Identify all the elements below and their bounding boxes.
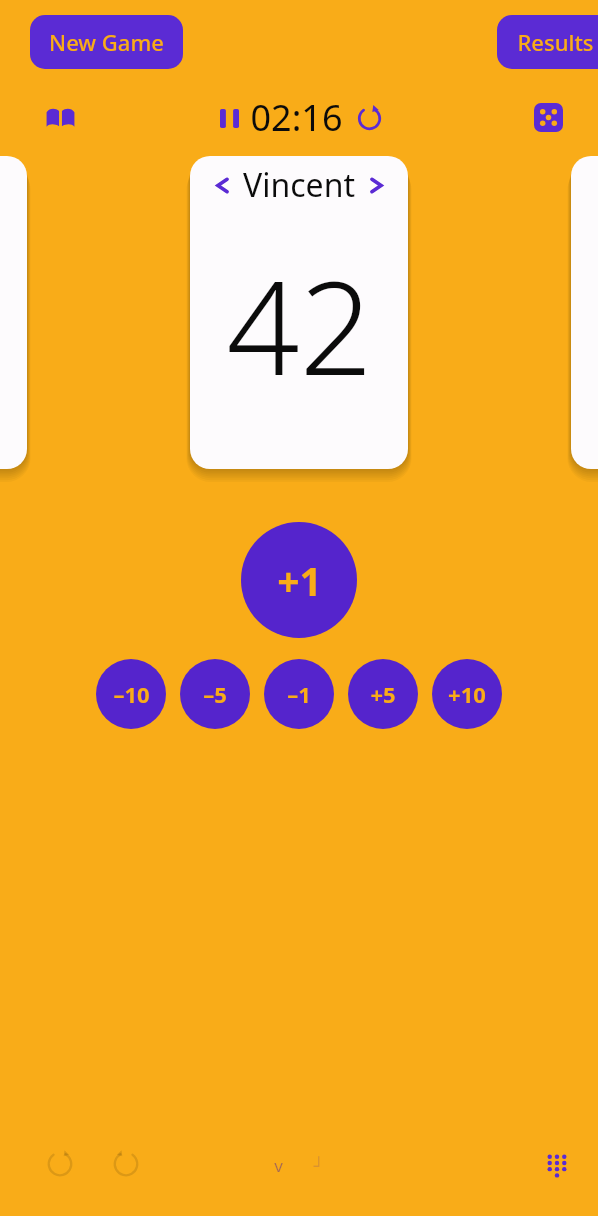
staticText: v [274, 1154, 283, 1177]
staticText: Results [517, 27, 594, 57]
button[interactable] [571, 156, 598, 469]
staticText: –10 [113, 679, 150, 709]
button[interactable]: +5 [348, 659, 418, 729]
staticText: +10 [448, 679, 486, 709]
staticText: Vincent [243, 163, 355, 207]
staticText: 02:16 [250, 93, 343, 142]
button[interactable]: +10 [432, 659, 502, 729]
button[interactable]: +1 [241, 522, 357, 638]
button[interactable]: Pause timer [212, 101, 246, 135]
button[interactable]: –1 [264, 659, 334, 729]
staticText: –5 [203, 679, 227, 709]
staticText: New Game [49, 27, 164, 57]
button[interactable]: Redo [104, 1142, 148, 1186]
button[interactable]: –10 [96, 659, 166, 729]
button[interactable]: Rules [38, 95, 82, 139]
staticText: ┘ [313, 1156, 324, 1176]
button[interactable]: New Game [30, 15, 183, 69]
button[interactable]: Roll dice [526, 95, 570, 139]
staticText: +1 [277, 554, 322, 607]
button[interactable]: Next player [360, 169, 392, 201]
button[interactable]: –5 [180, 659, 250, 729]
button[interactable]: Previous player [206, 169, 238, 201]
staticText: 42 [226, 238, 373, 412]
button[interactable] [0, 156, 27, 469]
button[interactable]: Reset timer [351, 100, 387, 136]
button[interactable]: Undo [38, 1142, 82, 1186]
staticText: +5 [370, 679, 396, 709]
staticText: –1 [287, 679, 311, 709]
button[interactable]: Results [497, 15, 598, 69]
button[interactable]: Keypad [534, 1142, 580, 1188]
